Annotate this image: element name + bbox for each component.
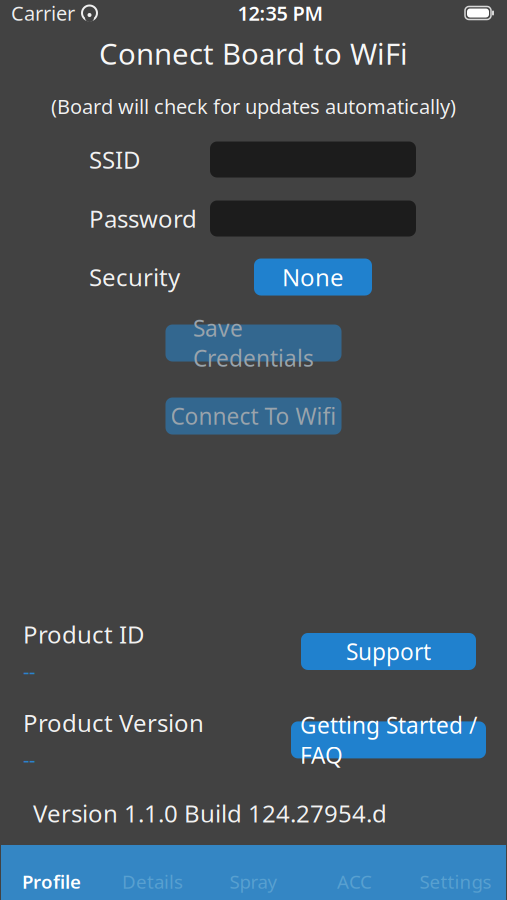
staticText: Carrier bbox=[11, 0, 75, 26]
staticText: None bbox=[282, 261, 344, 293]
button[interactable]: Support bbox=[301, 633, 476, 670]
button[interactable]: Save Credentials bbox=[165, 324, 341, 361]
staticText: Profile bbox=[22, 869, 81, 894]
staticText: 12:35 PM bbox=[237, 0, 323, 26]
button[interactable]: Connect To Wifi bbox=[165, 397, 341, 434]
staticText: Product ID bbox=[23, 618, 145, 650]
button[interactable]: Profile bbox=[1, 845, 102, 900]
staticText: ACC bbox=[337, 869, 372, 894]
staticText: Details bbox=[122, 869, 183, 894]
staticText: Settings bbox=[419, 869, 491, 894]
button[interactable]: Details bbox=[102, 845, 203, 900]
staticText: -- bbox=[23, 747, 35, 773]
button[interactable]: Getting Started / FAQ bbox=[291, 721, 486, 758]
staticText: Connect To Wifi bbox=[170, 401, 336, 431]
staticText: Security bbox=[89, 261, 180, 293]
staticText: Support bbox=[346, 636, 431, 666]
button[interactable]: None bbox=[254, 258, 372, 295]
button[interactable]: Spray bbox=[203, 845, 304, 900]
staticText: Product Version bbox=[23, 707, 204, 739]
staticText: -- bbox=[23, 658, 35, 685]
staticText: Getting Started / FAQ bbox=[300, 710, 477, 770]
staticText: SSID bbox=[89, 144, 141, 175]
button[interactable]: Settings bbox=[405, 845, 506, 900]
staticText: Spray bbox=[229, 869, 277, 894]
staticText: Save Credentials bbox=[193, 313, 314, 373]
staticText: Version 1.1.0 Build 124.27954.d bbox=[33, 797, 387, 829]
staticText: (Board will check for updates automatica… bbox=[51, 93, 456, 120]
button[interactable]: ACC bbox=[304, 845, 405, 900]
staticText: Connect Board to WiFi bbox=[99, 34, 408, 73]
staticText: Password bbox=[89, 203, 197, 234]
